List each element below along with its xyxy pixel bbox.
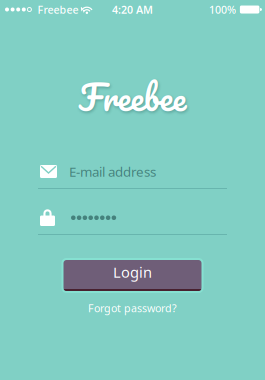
staticText: 4:20 AM	[112, 2, 153, 17]
button[interactable]: Login	[61, 258, 203, 293]
button[interactable]: Forgot password?	[88, 301, 177, 315]
staticText: 100%	[209, 2, 236, 17]
staticText: Freebee	[78, 68, 186, 126]
staticText: E-mail address	[69, 163, 156, 180]
staticText: Freebee	[37, 2, 78, 17]
staticText: Login	[113, 262, 152, 282]
staticText: Forgot password?	[88, 301, 177, 315]
